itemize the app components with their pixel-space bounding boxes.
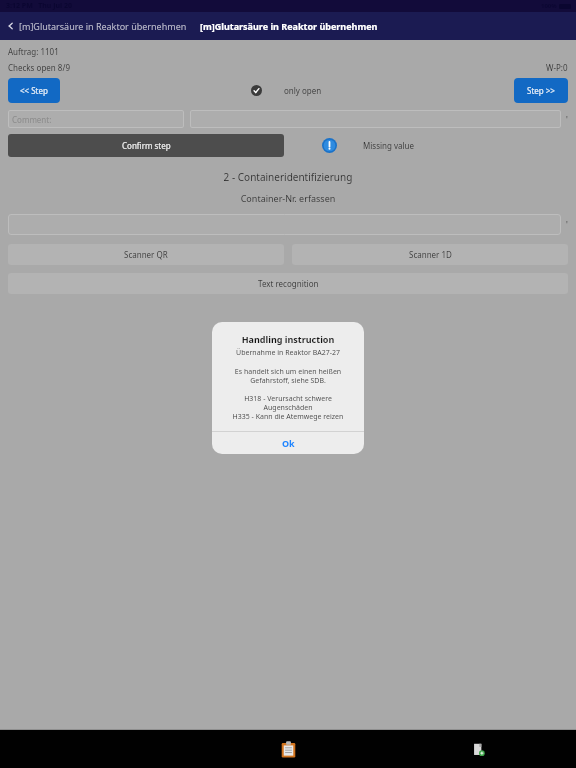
staticText: 2 - Containeridentifizierung bbox=[8, 170, 568, 184]
button[interactable] bbox=[8, 214, 561, 235]
button[interactable]: New document bbox=[466, 737, 490, 761]
staticText: Comment: bbox=[12, 114, 52, 125]
button[interactable]: Confirm step bbox=[8, 134, 284, 157]
staticText: << Step bbox=[20, 85, 48, 96]
staticText: H318 - Verursacht schwere Augenschäden H… bbox=[217, 394, 359, 421]
button[interactable]: Scanner 1D bbox=[292, 244, 568, 265]
button[interactable]: Tasks bbox=[275, 736, 301, 762]
staticText: only open bbox=[284, 85, 322, 96]
other: Missing value bbox=[322, 138, 337, 153]
button[interactable]: Ok bbox=[212, 432, 364, 454]
staticText: Missing value bbox=[363, 140, 415, 151]
staticText: [m]Glutarsäure in Reaktor übernehmen bbox=[19, 20, 187, 32]
staticText: W-P:0 bbox=[546, 62, 568, 73]
button[interactable] bbox=[190, 110, 561, 128]
button[interactable]: Back bbox=[6, 20, 187, 32]
staticText: Confirm step bbox=[122, 140, 171, 151]
staticText: ' bbox=[566, 219, 568, 230]
staticText: Step >> bbox=[527, 85, 555, 96]
staticText: Container-Nr. erfassen bbox=[8, 192, 568, 204]
button[interactable]: only open bbox=[251, 85, 322, 96]
staticText: ' bbox=[566, 114, 568, 125]
button[interactable]: << Step bbox=[8, 78, 60, 103]
staticText: Text recognition bbox=[258, 278, 319, 289]
staticText: Scanner QR bbox=[124, 249, 168, 260]
button[interactable]: Comment: bbox=[8, 110, 184, 128]
staticText: [m]Glutarsäure in Reaktor übernehmen bbox=[200, 20, 378, 32]
button[interactable]: Text recognition bbox=[8, 273, 568, 294]
staticText: Scanner 1D bbox=[409, 249, 452, 260]
staticText: Ok bbox=[282, 437, 295, 449]
button[interactable]: Step >> bbox=[514, 78, 568, 103]
button[interactable]: Scanner QR bbox=[8, 244, 284, 265]
staticText: Checks open 8/9 bbox=[8, 62, 70, 73]
staticText: Es handelt sich um einen heißen Gefahrst… bbox=[219, 367, 357, 385]
staticText: Auftrag: 1101 bbox=[8, 46, 59, 57]
staticText: Handling instruction bbox=[212, 333, 364, 345]
staticText: Übernahme in Reaktor BA27-27 bbox=[219, 348, 357, 358]
